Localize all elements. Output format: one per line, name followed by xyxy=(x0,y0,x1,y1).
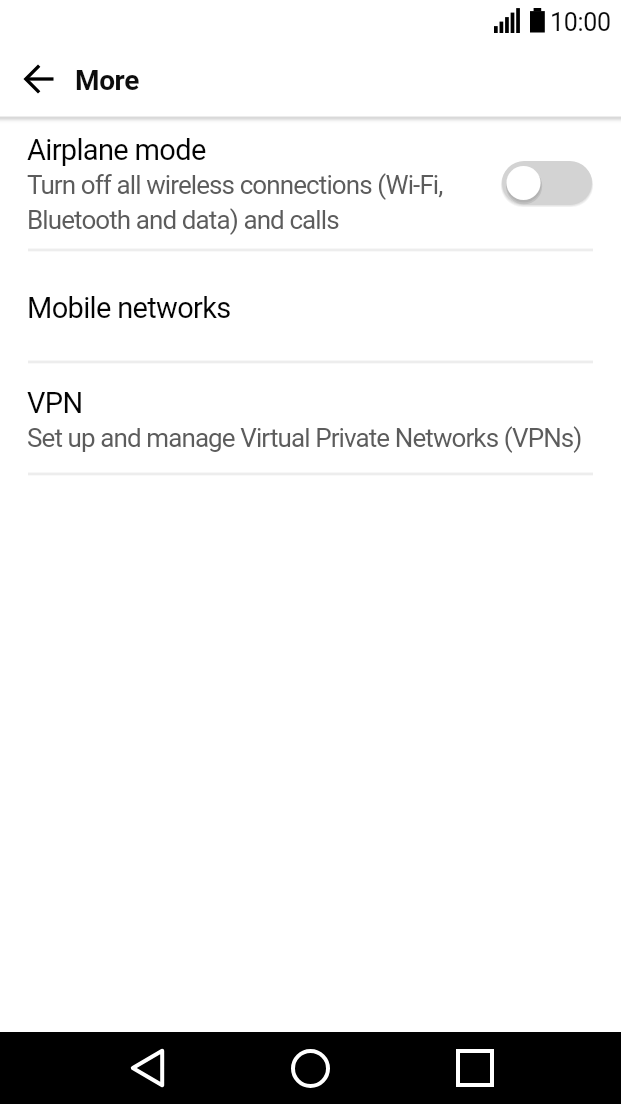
button[interactable]: Recent apps xyxy=(447,1040,503,1096)
button[interactable]: Airplane mode xyxy=(0,119,621,250)
staticText: VPN xyxy=(27,386,83,420)
staticText: More xyxy=(75,64,139,97)
button[interactable]: Home xyxy=(282,1040,338,1096)
button[interactable]: Back xyxy=(119,1040,175,1096)
button[interactable]: Navigate up xyxy=(10,50,67,107)
staticText: Set up and manage Virtual Private Networ… xyxy=(27,423,582,453)
staticText: Turn off all wireless connections (Wi-Fi… xyxy=(27,170,487,235)
staticText: 10:00 xyxy=(550,8,611,37)
button[interactable]: Airplane mode switch, off xyxy=(502,161,596,211)
button[interactable]: Mobile networks xyxy=(0,250,621,362)
button[interactable]: VPN xyxy=(0,362,621,474)
staticText: Mobile networks xyxy=(27,291,231,325)
staticText: Airplane mode xyxy=(27,133,206,167)
